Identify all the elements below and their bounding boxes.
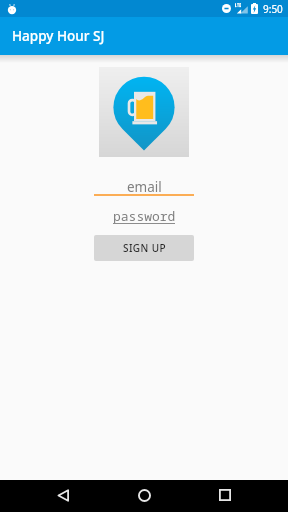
staticText: SIGN UP [123, 241, 166, 255]
staticText: 9:50 [263, 2, 283, 16]
button[interactable]: Back [45, 484, 81, 506]
button[interactable]: password [94, 207, 194, 223]
button[interactable]: email [94, 178, 194, 194]
staticText: Happy Hour SJ [12, 27, 105, 45]
button[interactable]: Recents [207, 484, 243, 506]
staticText: password [113, 207, 176, 223]
button[interactable]: Home [126, 484, 162, 506]
button[interactable]: SIGN UP [94, 235, 194, 261]
staticText: email [127, 178, 162, 194]
